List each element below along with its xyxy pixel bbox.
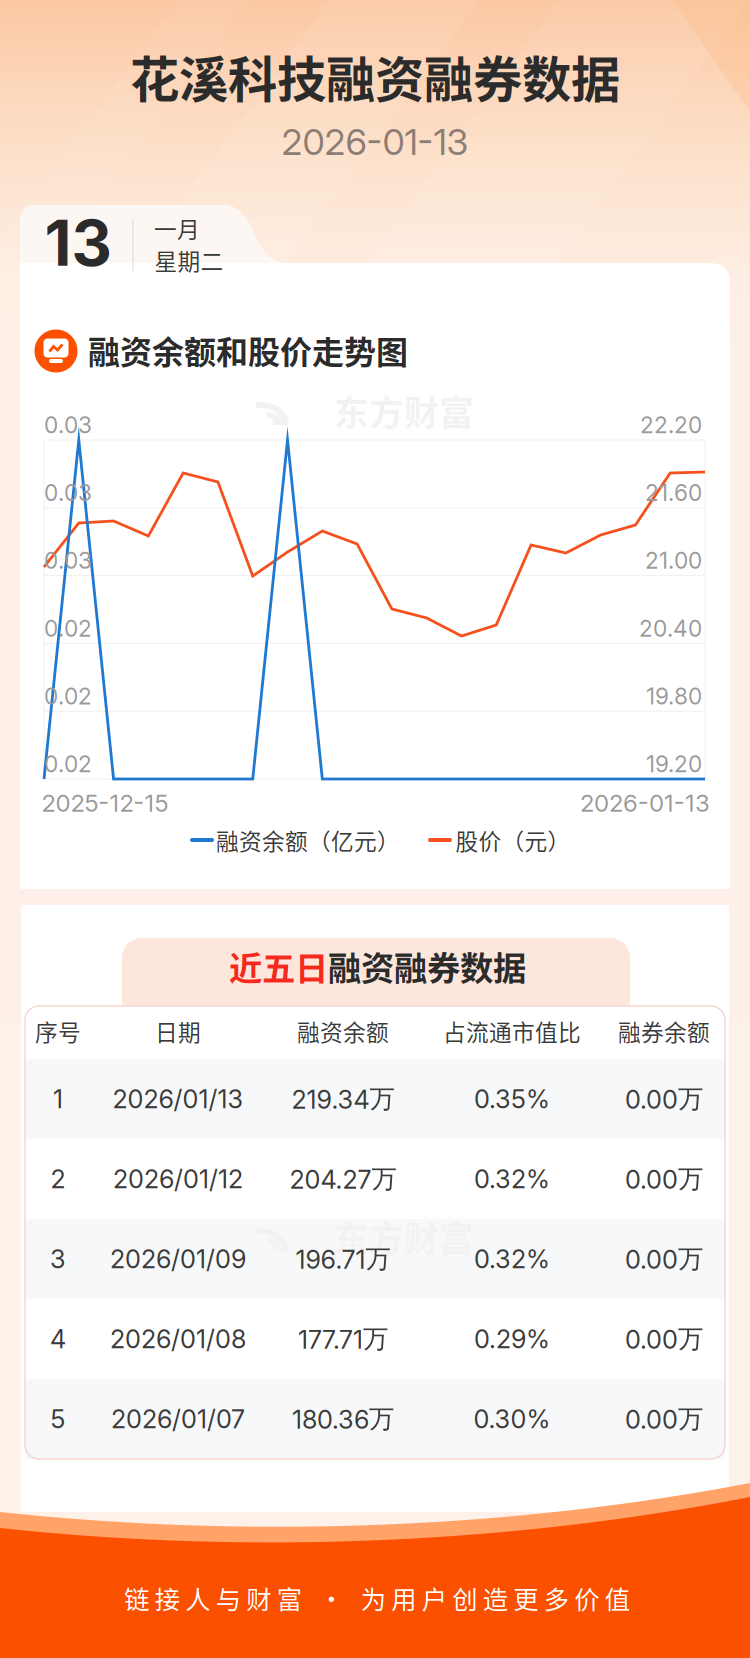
staticText: 0.00万 bbox=[625, 1243, 703, 1275]
staticText: 4 bbox=[50, 1324, 66, 1354]
staticText: 177.71万 bbox=[298, 1323, 388, 1355]
staticText: 0.00万 bbox=[625, 1323, 703, 1355]
staticText: 融资余额和股价走势图 bbox=[88, 327, 408, 373]
staticText: 2026/01/12 bbox=[113, 1164, 243, 1194]
staticText: 2026/01/07 bbox=[111, 1404, 245, 1434]
staticText: 融资余额 bbox=[297, 1015, 389, 1047]
staticText: 21.00 bbox=[645, 547, 702, 574]
staticText: 近五日 bbox=[229, 942, 328, 990]
staticText: 180.36万 bbox=[292, 1403, 394, 1435]
staticText: 19.20 bbox=[646, 750, 702, 778]
staticText: 204.27万 bbox=[289, 1163, 396, 1195]
staticText: 2025-12-15 bbox=[41, 788, 168, 817]
staticText: 日期 bbox=[155, 1015, 201, 1047]
staticText: 0.30% bbox=[473, 1404, 550, 1434]
staticText: 占流通市值比 bbox=[443, 1015, 581, 1047]
staticText: 22.20 bbox=[640, 411, 702, 439]
staticText: 东方财富 bbox=[334, 1212, 474, 1262]
staticText: 0.00万 bbox=[625, 1083, 703, 1115]
staticText: 20.40 bbox=[639, 615, 702, 642]
staticText: 2026-01-13 bbox=[281, 120, 468, 164]
staticText: 0.02 bbox=[44, 750, 92, 778]
staticText: 星期二 bbox=[154, 244, 223, 276]
staticText: 2026/01/13 bbox=[112, 1084, 243, 1114]
staticText: 0.32% bbox=[474, 1164, 550, 1194]
staticText: 2026-01-13 bbox=[580, 788, 710, 817]
staticText: 0.35% bbox=[474, 1084, 550, 1114]
staticText: 2 bbox=[50, 1164, 65, 1194]
staticText: 股价（元） bbox=[455, 824, 570, 856]
staticText: 1 bbox=[53, 1084, 63, 1114]
staticText: 196.71万 bbox=[295, 1243, 390, 1275]
staticText: 0.03 bbox=[44, 411, 92, 439]
staticText: 0.00万 bbox=[625, 1403, 703, 1435]
staticText: 0.02 bbox=[44, 615, 92, 642]
staticText: 一月 bbox=[154, 212, 200, 244]
staticText: 序号 bbox=[35, 1015, 81, 1047]
staticText: 0.32% bbox=[474, 1244, 550, 1274]
staticText: 融资余额（亿元） bbox=[216, 824, 400, 856]
staticText: 链接人与财富 · 为用户创造更多价值 bbox=[124, 1580, 630, 1616]
staticText: 0.29% bbox=[474, 1324, 550, 1354]
staticText: 3 bbox=[50, 1244, 66, 1274]
staticText: 0.03 bbox=[44, 547, 92, 574]
staticText: 21.60 bbox=[645, 479, 702, 506]
staticText: 花溪科技融资融券数据 bbox=[130, 40, 620, 112]
staticText: 19.80 bbox=[646, 682, 702, 710]
staticText: 0.00万 bbox=[625, 1163, 703, 1195]
staticText: 0.03 bbox=[44, 479, 92, 506]
staticText: 融券余额 bbox=[618, 1015, 710, 1047]
staticText: 219.34万 bbox=[291, 1083, 394, 1115]
staticText: 5 bbox=[50, 1404, 65, 1434]
staticText: 2026/01/08 bbox=[110, 1324, 246, 1354]
staticText: 融资融券数据 bbox=[328, 942, 526, 990]
staticText: 2026/01/09 bbox=[110, 1244, 246, 1274]
staticText: 东方财富 bbox=[334, 386, 474, 436]
staticText: 0.02 bbox=[44, 682, 92, 710]
staticText: 13 bbox=[44, 205, 111, 281]
